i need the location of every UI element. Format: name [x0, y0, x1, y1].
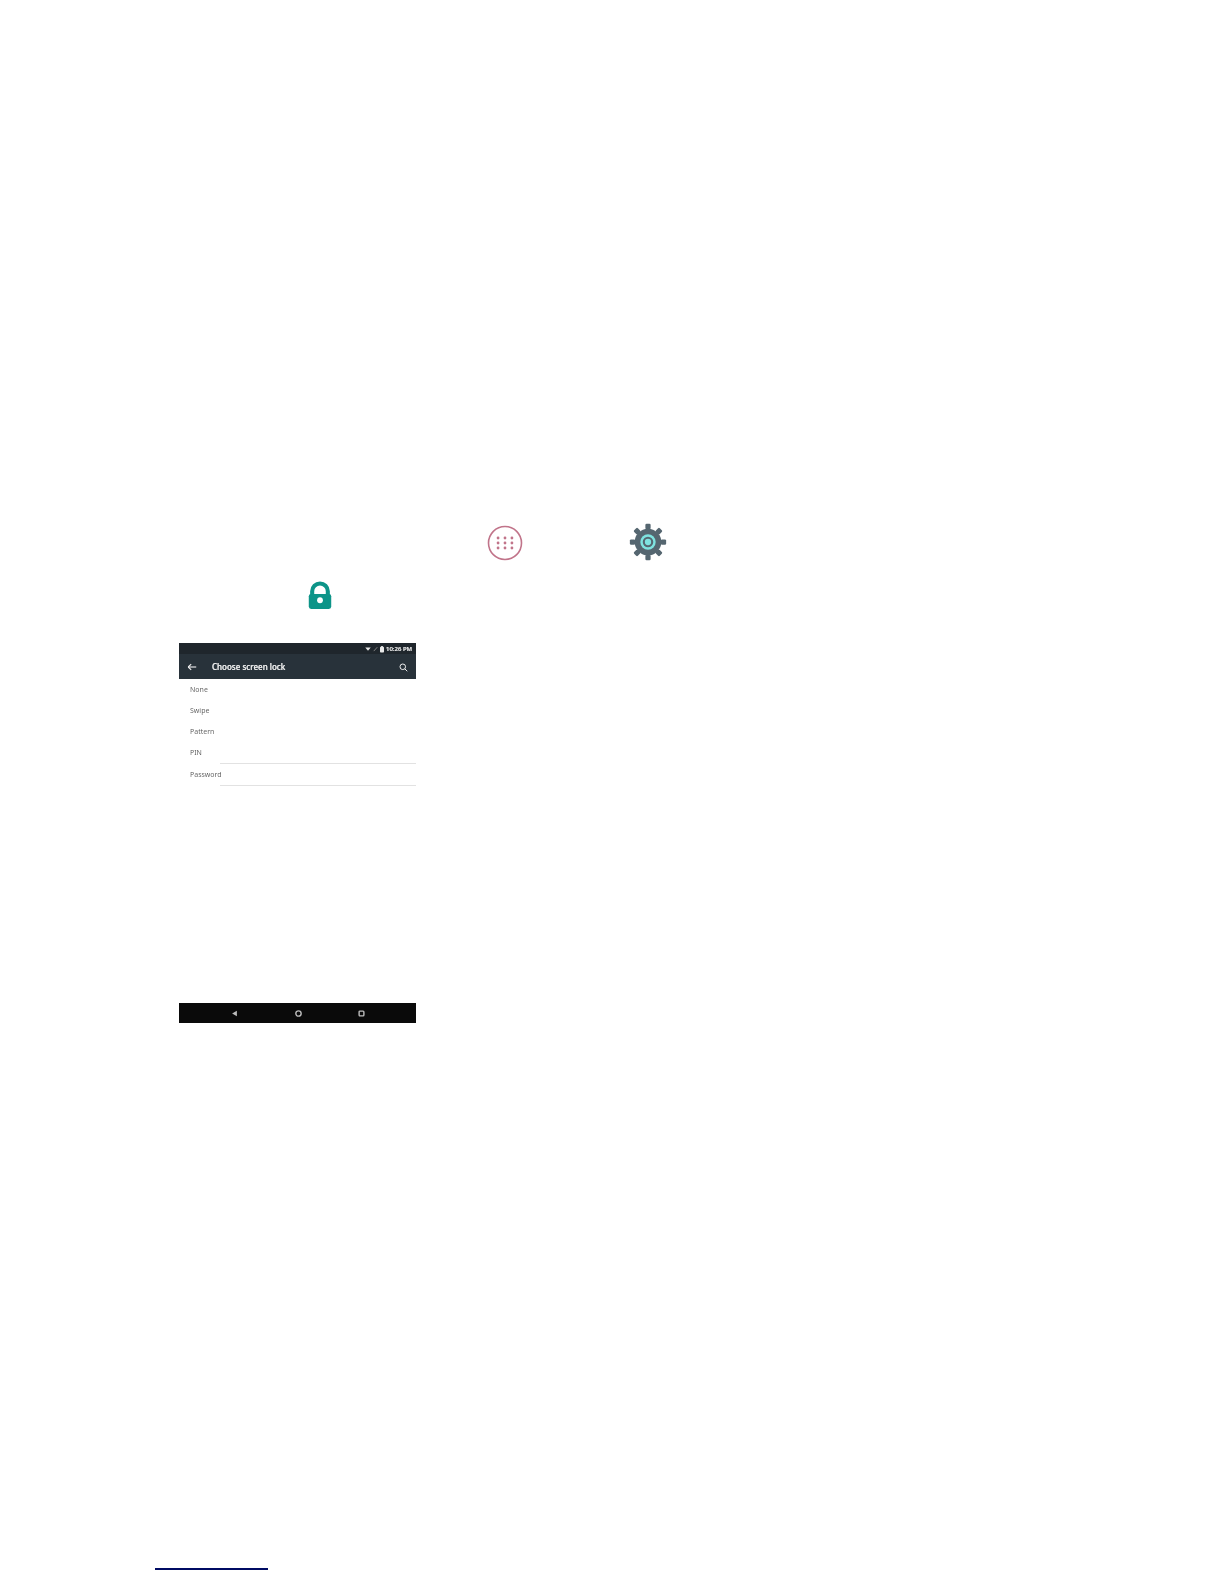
- button[interactable]: Back: [185, 660, 199, 674]
- button[interactable]: Back: [226, 1005, 242, 1021]
- button[interactable]: Swipe: [179, 700, 416, 721]
- staticText: Pattern: [190, 727, 215, 737]
- staticText: PIN: [190, 748, 202, 758]
- button[interactable]: Settings: [629, 523, 667, 561]
- staticText: Choose screen lock: [212, 661, 286, 672]
- button[interactable]: Home: [290, 1005, 306, 1021]
- staticText: Swipe: [190, 706, 210, 716]
- button[interactable]: Screen lock: [303, 578, 337, 612]
- staticText: None: [190, 685, 208, 695]
- staticText: Password: [190, 770, 222, 780]
- button[interactable]: Apps: [486, 524, 524, 562]
- button[interactable]: PIN: [179, 742, 416, 763]
- button[interactable]: None: [179, 679, 416, 700]
- button[interactable]: Password: [179, 764, 416, 785]
- button[interactable]: Pattern: [179, 721, 416, 742]
- staticText: 10:26 PM: [386, 645, 413, 653]
- button[interactable]: Search: [396, 660, 410, 674]
- button[interactable]: Recent apps: [353, 1005, 369, 1021]
